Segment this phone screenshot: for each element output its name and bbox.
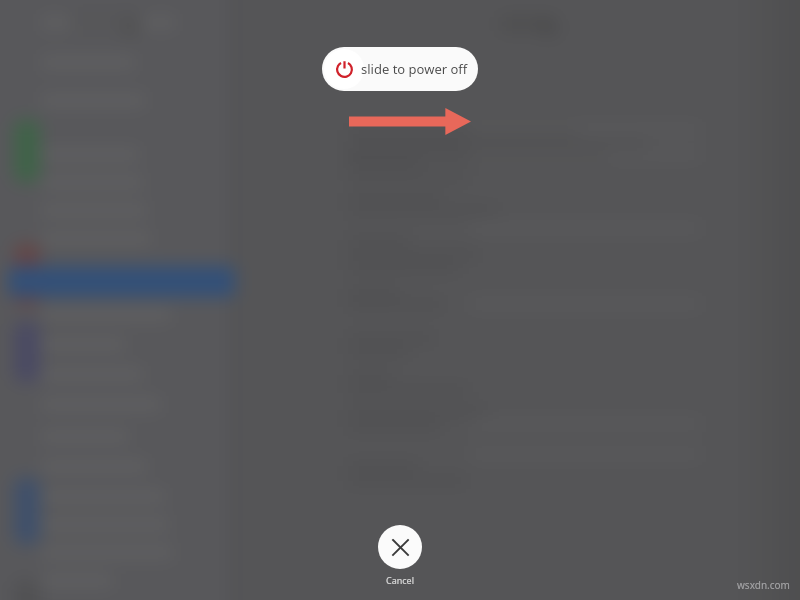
staticText: wsxdn.com	[737, 578, 790, 592]
button[interactable]: slide to power off	[322, 47, 478, 91]
staticText: slide to power off	[361, 60, 468, 78]
button[interactable]: Cancel	[378, 525, 422, 586]
staticText: Cancel	[378, 574, 422, 586]
